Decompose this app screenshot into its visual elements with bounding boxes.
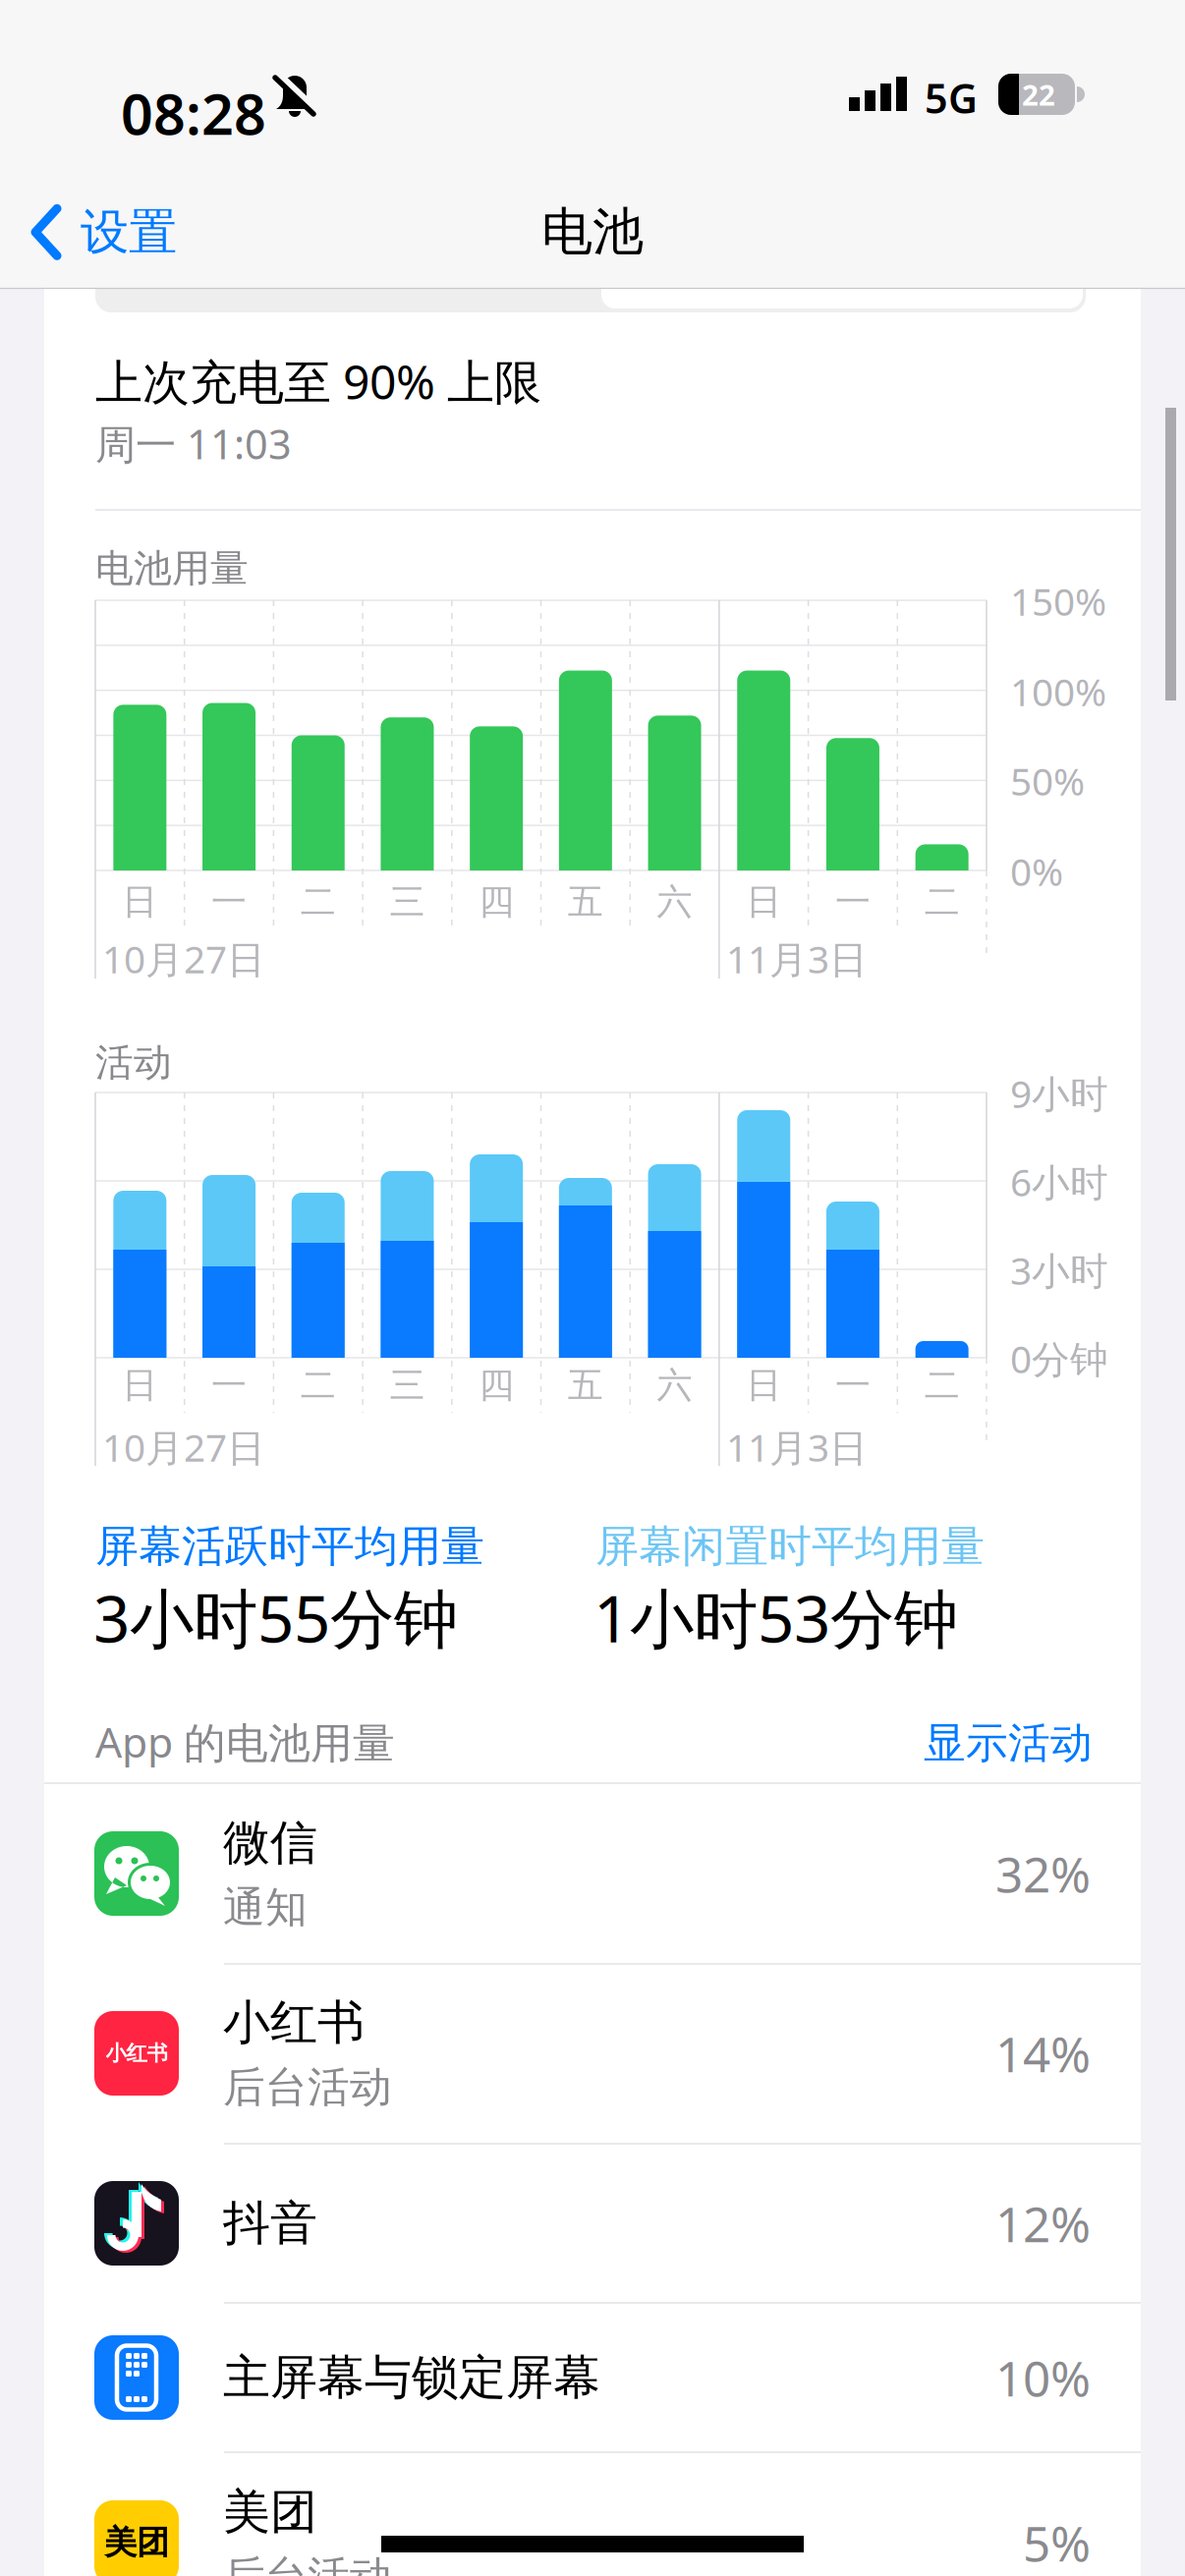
staticText: 后台活动 bbox=[223, 2551, 392, 2576]
staticText: 日 bbox=[746, 880, 781, 924]
staticText: 3小时55分钟 bbox=[93, 1575, 458, 1660]
staticText: 六 bbox=[657, 880, 692, 924]
staticText: 日 bbox=[122, 1364, 158, 1407]
staticText: 5G bbox=[925, 71, 978, 125]
button[interactable]: 主屏幕与锁定屏幕 bbox=[44, 2303, 1141, 2452]
staticText: 设置 bbox=[81, 202, 177, 262]
staticText: 小红书 bbox=[106, 2040, 168, 2066]
staticText: 0% bbox=[1010, 846, 1063, 896]
staticText: 五 bbox=[568, 880, 603, 924]
staticText: 显示活动 bbox=[924, 1717, 1093, 1769]
staticText: 二 bbox=[300, 880, 336, 924]
staticText: 二 bbox=[924, 1364, 960, 1407]
staticText: 三 bbox=[389, 1364, 425, 1407]
staticText: 1小时53分钟 bbox=[593, 1575, 958, 1660]
staticText: 上次充电至 90% 上限 bbox=[95, 350, 541, 412]
staticText: 100% bbox=[1010, 666, 1106, 717]
staticText: 小红书 bbox=[223, 1994, 365, 2052]
staticText: 电池用量 bbox=[95, 545, 249, 592]
staticText: 六 bbox=[657, 1364, 692, 1407]
staticText: 一 bbox=[211, 880, 247, 924]
button[interactable]: 美团 bbox=[44, 2452, 1141, 2576]
staticText: 32% bbox=[995, 1841, 1091, 1906]
staticText: 后台活动 bbox=[223, 2061, 392, 2113]
staticText: 美团 bbox=[104, 2522, 169, 2563]
staticText: 50% bbox=[1010, 756, 1085, 806]
staticText: 11月3日 bbox=[726, 1422, 868, 1472]
staticText: 6小时 bbox=[1010, 1156, 1108, 1207]
staticText: 抖音 bbox=[223, 2194, 317, 2252]
staticText: App 的电池用量 bbox=[95, 1713, 395, 1769]
staticText: 电池 bbox=[541, 201, 644, 263]
staticText: 150% bbox=[1010, 576, 1106, 626]
staticText: 五 bbox=[568, 1364, 603, 1407]
staticText: 22 bbox=[1022, 75, 1055, 113]
staticText: 一 bbox=[835, 1364, 871, 1407]
staticText: 9小时 bbox=[1010, 1068, 1108, 1118]
staticText: 二 bbox=[924, 880, 960, 924]
button[interactable]: 小红书 bbox=[44, 1963, 1141, 2144]
button[interactable]: 设置 bbox=[31, 202, 177, 262]
staticText: 14% bbox=[995, 2021, 1091, 2085]
staticText: 0分钟 bbox=[1010, 1333, 1108, 1384]
staticText: 屏幕闲置时平均用量 bbox=[595, 1520, 985, 1573]
button[interactable]: 显示活动 bbox=[924, 1717, 1093, 1769]
button[interactable]: 显示时间范围 bbox=[95, 265, 1086, 312]
button[interactable]: 微信 bbox=[44, 1783, 1141, 1964]
staticText: 美团 bbox=[223, 2483, 317, 2541]
staticText: 10月27日 bbox=[102, 933, 265, 984]
staticText: 10% bbox=[995, 2345, 1091, 2410]
staticText: 日 bbox=[122, 880, 158, 924]
staticText: 二 bbox=[300, 1364, 336, 1407]
staticText: 微信 bbox=[223, 1814, 317, 1872]
staticText: 三 bbox=[389, 880, 425, 924]
staticText: 日 bbox=[746, 1364, 781, 1407]
staticText: 11月3日 bbox=[726, 933, 868, 984]
staticText: 活动 bbox=[95, 1039, 172, 1086]
staticText: 四 bbox=[479, 880, 514, 924]
button[interactable]: 抖音 bbox=[44, 2149, 1141, 2298]
staticText: 周一 11:03 bbox=[95, 417, 292, 470]
staticText: 一 bbox=[211, 1364, 247, 1407]
staticText: 3小时 bbox=[1010, 1245, 1108, 1295]
staticText: 四 bbox=[479, 1364, 514, 1407]
staticText: 屏幕活跃时平均用量 bbox=[95, 1520, 484, 1573]
staticText: 主屏幕与锁定屏幕 bbox=[223, 2349, 600, 2407]
staticText: 08:28 bbox=[121, 76, 266, 150]
staticText: 通知 bbox=[223, 1882, 308, 1933]
staticText: 12% bbox=[995, 2191, 1091, 2255]
staticText: 一 bbox=[835, 880, 871, 924]
staticText: 5% bbox=[1023, 2510, 1091, 2575]
staticText: 10月27日 bbox=[102, 1422, 265, 1472]
